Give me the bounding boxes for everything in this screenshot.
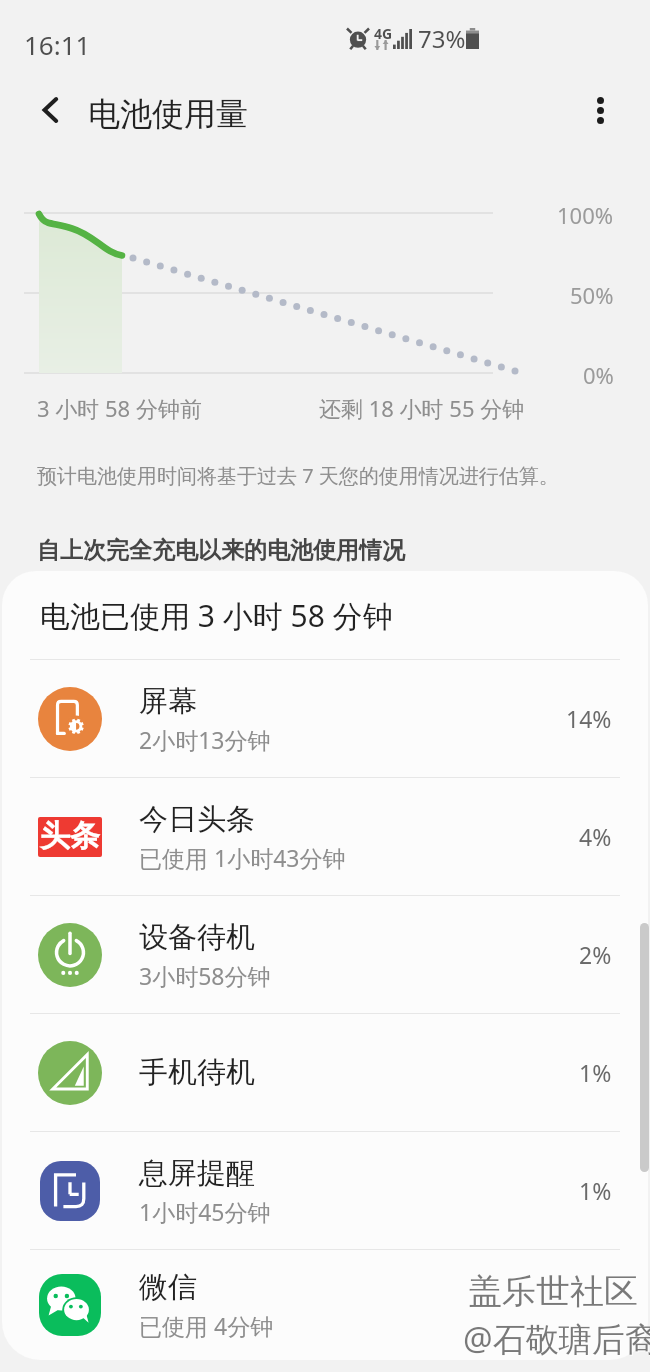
staticText: 1% [579, 1175, 612, 1206]
button[interactable]: 息屏提醒 [2, 1132, 648, 1249]
button[interactable]: 微信 [2, 1250, 648, 1360]
staticText: 1小时45分钟 [139, 1196, 271, 1227]
staticText: 设备待机 [139, 919, 255, 956]
staticText: 100% [557, 200, 614, 230]
staticText: 50% [570, 280, 614, 310]
staticText: 4% [579, 821, 612, 852]
staticText: 3小时58分钟 [139, 960, 271, 991]
staticText: 3 小时 58 分钟前 [37, 393, 202, 423]
staticText: 电池使用量 [88, 94, 248, 134]
staticText: 73% [418, 22, 466, 55]
staticText: 盖乐世社区 [469, 1271, 639, 1314]
staticText: 已使用 1小时43分钟 [139, 842, 346, 873]
staticText: 0% [583, 360, 614, 390]
staticText: 16:11 [24, 27, 91, 62]
staticText: 2小时13分钟 [139, 724, 271, 755]
staticText: 屏幕 [139, 683, 197, 720]
staticText: 今日头条 [139, 801, 255, 838]
button[interactable]: Back [18, 78, 82, 142]
button[interactable]: 头条 [2, 778, 648, 895]
button[interactable]: 屏幕 [2, 660, 648, 777]
staticText: 2% [579, 939, 612, 970]
button[interactable]: More options [568, 78, 632, 142]
staticText: 手机待机 [139, 1054, 255, 1091]
staticText: 微信 [139, 1269, 197, 1306]
staticText: 4G [374, 24, 393, 43]
staticText: 自上次完全充电以来的电池使用情况 [37, 536, 405, 565]
staticText: 电池已使用 3 小时 58 分钟 [40, 595, 393, 636]
staticText: 盖乐世社区 [468, 1270, 638, 1313]
button[interactable]: 设备待机 [2, 896, 648, 1013]
staticText: 已使用 4分钟 [139, 1310, 274, 1341]
staticText: 息屏提醒 [139, 1155, 255, 1192]
staticText: @石敬瑭后裔 [464, 1317, 650, 1362]
staticText: 14% [566, 703, 612, 734]
staticText: 预计电池使用时间将基于过去 7 天您的使用情况进行估算。 [37, 462, 559, 489]
staticText: 还剩 18 小时 55 分钟 [319, 393, 525, 423]
staticText: 1% [579, 1057, 612, 1088]
staticText: 头条 [40, 817, 100, 855]
button[interactable]: 手机待机 [2, 1014, 648, 1131]
staticText: @石敬瑭后裔 [463, 1316, 650, 1361]
